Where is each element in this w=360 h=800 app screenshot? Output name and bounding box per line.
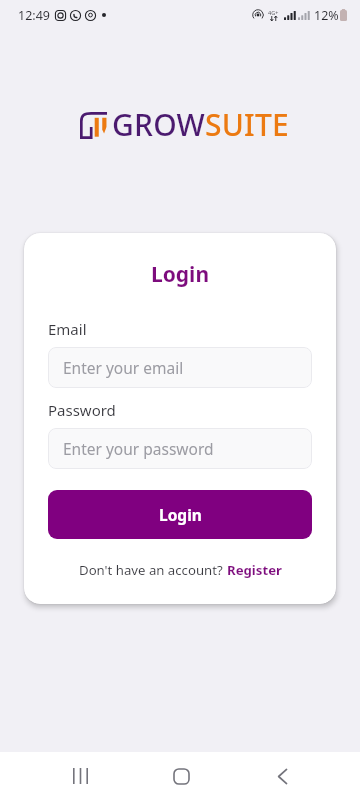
button[interactable]: Register: [227, 561, 282, 579]
button[interactable]: Home: [157, 752, 205, 800]
staticText: 4G+: [268, 9, 279, 16]
button[interactable]: Login: [48, 490, 312, 539]
staticText: Enter your password: [63, 438, 214, 459]
button[interactable]: Back: [258, 752, 306, 800]
staticText: Login: [159, 504, 202, 525]
staticText: Enter your email: [63, 357, 184, 378]
staticText: Password: [48, 400, 116, 420]
staticText: Don't have an account?: [79, 561, 227, 579]
button[interactable]: Enter your email: [48, 347, 312, 388]
button[interactable]: Recent apps: [56, 752, 104, 800]
staticText: Email: [48, 319, 87, 339]
staticText: Login: [24, 260, 336, 289]
staticText: GROWSUITE: [112, 104, 289, 145]
staticText: 12%: [314, 7, 339, 24]
button[interactable]: Enter your password: [48, 428, 312, 469]
staticText: 12:49: [18, 7, 50, 24]
